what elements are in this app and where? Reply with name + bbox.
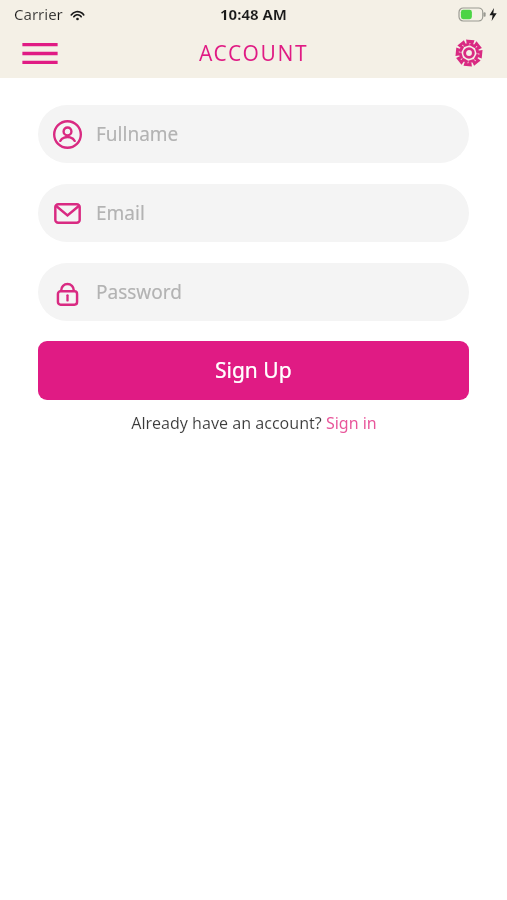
button[interactable]: Password — [38, 263, 469, 321]
staticText: Password — [96, 279, 182, 305]
button[interactable]: Fullname — [38, 105, 469, 163]
staticText: Sign Up — [215, 356, 292, 385]
button[interactable]: Email — [38, 184, 469, 242]
staticText: Email — [96, 200, 145, 226]
button[interactable]: Settings — [447, 31, 491, 75]
button[interactable]: Already have an account? Sign in — [0, 412, 507, 434]
staticText: Already have an account? Sign in — [131, 412, 377, 434]
staticText: Carrier — [14, 4, 63, 24]
staticText: ACCOUNT — [199, 39, 309, 68]
button[interactable]: Sign Up — [38, 341, 469, 400]
staticText: Fullname — [96, 121, 179, 147]
button[interactable]: Menu — [18, 31, 62, 75]
staticText: 10:48 AM — [220, 4, 287, 24]
